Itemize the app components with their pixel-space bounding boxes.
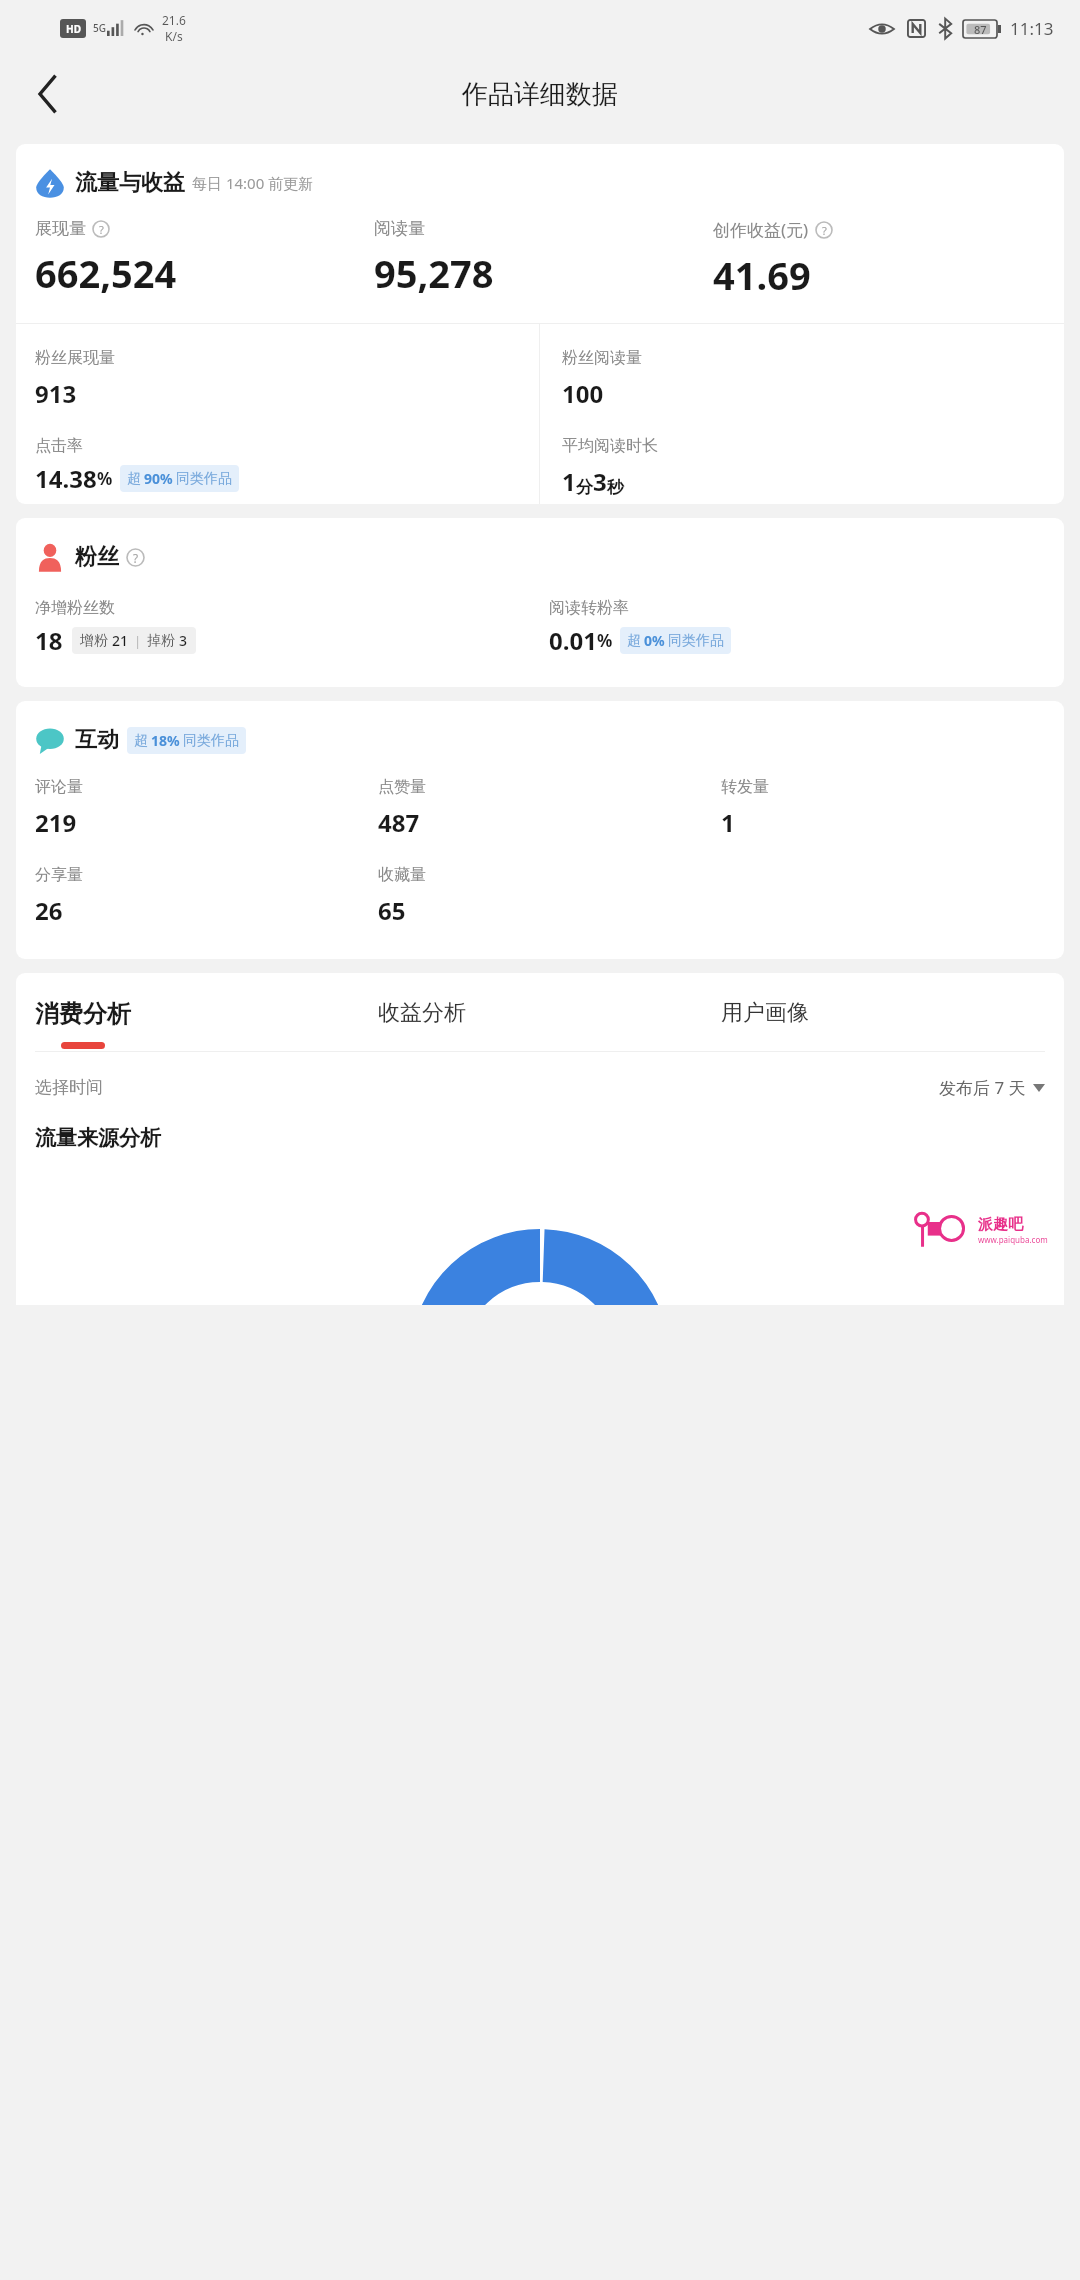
staticText: 同类作品 — [183, 732, 239, 750]
staticText: 派趣吧 — [978, 1215, 1023, 1234]
staticText: | — [134, 632, 142, 650]
staticText: 65 — [378, 894, 406, 927]
staticText: 互动 — [75, 726, 119, 754]
staticText: 消费分析 — [35, 999, 131, 1029]
staticText: 点赞量 — [378, 777, 426, 797]
staticText: 0% — [644, 631, 665, 650]
staticText: 100 — [562, 377, 604, 410]
staticText: 增粉 — [80, 632, 108, 650]
staticText: 18 — [35, 624, 63, 657]
staticText: 流量与收益 — [75, 169, 185, 197]
button[interactable]: Back — [20, 66, 76, 122]
staticText: 收益分析 — [378, 999, 466, 1027]
staticText: 点击率 — [35, 436, 83, 456]
staticText: 发布后 7 天 — [939, 1076, 1026, 1099]
staticText: 21 — [112, 631, 129, 650]
button[interactable]: 用户画像 — [721, 999, 1064, 1047]
staticText: 平均阅读时长 — [562, 436, 658, 456]
staticText: 21.6 — [162, 12, 186, 28]
staticText: 粉丝展现量 — [35, 348, 115, 368]
staticText: 阅读量 — [374, 218, 425, 239]
staticText: 5G — [93, 21, 106, 35]
staticText: 95,278 — [374, 247, 494, 299]
staticText: 转发量 — [721, 777, 769, 797]
staticText: 收藏量 — [378, 865, 426, 885]
staticText: 同类作品 — [176, 470, 232, 488]
staticText: 掉粉 — [147, 632, 175, 650]
staticText: 同类作品 — [668, 632, 724, 650]
staticText: 流量来源分析 — [35, 1125, 161, 1151]
staticText: 展现量 — [35, 218, 86, 239]
staticText: % — [597, 629, 613, 652]
staticText: 41.69 — [713, 249, 811, 301]
staticText: 1 — [721, 806, 735, 839]
staticText: K/s — [165, 28, 183, 44]
staticText: 超 — [134, 732, 148, 750]
staticText: 913 — [35, 377, 77, 410]
staticText: 11:13 — [1010, 17, 1054, 40]
staticText: 选择时间 — [35, 1077, 103, 1098]
staticText: 87 — [974, 22, 987, 37]
staticText: 26 — [35, 894, 63, 927]
staticText: 评论量 — [35, 777, 83, 797]
staticText: 作品详细数据 — [462, 78, 618, 111]
staticText: 阅读转粉率 — [549, 598, 629, 618]
staticText: 219 — [35, 806, 77, 839]
staticText: 90% — [144, 469, 173, 488]
staticText: 0.01 — [549, 624, 597, 657]
staticText: ? — [822, 223, 827, 238]
staticText: 每日 14:00 前更新 — [192, 173, 314, 193]
staticText: 粉丝 — [75, 543, 119, 571]
button[interactable]: 收益分析 — [378, 999, 721, 1047]
staticText: 超 — [627, 632, 641, 650]
staticText: 662,524 — [35, 247, 177, 299]
staticText: 粉丝阅读量 — [562, 348, 642, 368]
staticText: HD — [66, 22, 81, 36]
staticText: 3 — [593, 465, 607, 498]
staticText: 1 — [562, 465, 576, 498]
staticText: 分 — [576, 477, 593, 498]
staticText: 487 — [378, 806, 420, 839]
staticText: ? — [133, 550, 139, 566]
button[interactable]: 选择时间 — [35, 1076, 1045, 1099]
staticText: 18% — [151, 731, 180, 750]
staticText: 14.38 — [35, 462, 97, 495]
staticText: 净增粉丝数 — [35, 598, 115, 618]
staticText: 创作收益(元) — [713, 218, 809, 241]
staticText: 用户画像 — [721, 999, 809, 1027]
staticText: 秒 — [607, 477, 624, 498]
staticText: 3 — [179, 631, 188, 650]
staticText: www.paiquba.com — [978, 1234, 1048, 1245]
staticText: ? — [99, 222, 104, 237]
staticText: 分享量 — [35, 865, 83, 885]
button[interactable]: 消费分析 — [35, 999, 378, 1049]
staticText: % — [97, 467, 113, 490]
staticText: 超 — [127, 470, 141, 488]
